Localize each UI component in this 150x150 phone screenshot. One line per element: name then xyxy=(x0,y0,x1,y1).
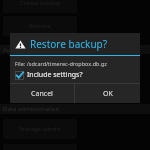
button[interactable]: Automatic backup xyxy=(0,45,150,54)
staticText: Cancel xyxy=(31,89,53,99)
staticText: OK xyxy=(103,89,113,99)
staticText: File: /sdcard/timerec-dropbox.db.gz xyxy=(15,60,107,67)
button[interactable]: OK xyxy=(75,84,140,103)
staticText: Automatic backup xyxy=(3,46,50,53)
staticText: Restore xyxy=(29,22,51,30)
staticText: Create backup xyxy=(20,0,61,7)
button[interactable]: Restore xyxy=(3,16,77,36)
staticText: Storage admin xyxy=(19,125,61,133)
staticText: Include settings? xyxy=(27,70,83,80)
staticText: Restore backup? xyxy=(30,37,108,51)
staticText: Data administration xyxy=(3,105,60,113)
button[interactable]: Include settings? xyxy=(15,70,83,80)
button[interactable]: Cancel xyxy=(10,84,74,103)
